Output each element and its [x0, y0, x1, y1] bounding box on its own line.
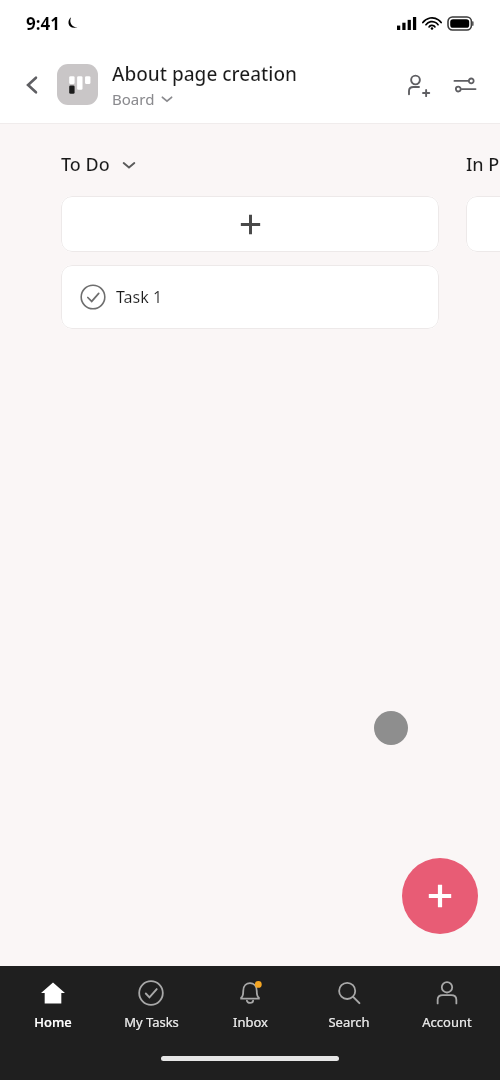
- button[interactable]: Task 1: [61, 265, 439, 329]
- button[interactable]: To Do: [61, 152, 136, 177]
- button[interactable]: Home: [7, 978, 99, 1031]
- button[interactable]: Board: [112, 89, 173, 109]
- staticText: About page creation: [112, 61, 297, 87]
- button[interactable]: Filter and sort: [444, 64, 486, 106]
- button[interactable]: Account: [401, 978, 493, 1031]
- staticText: To Do: [61, 152, 110, 177]
- staticText: Home: [34, 1013, 72, 1031]
- button[interactable]: Search: [303, 978, 395, 1031]
- staticText: Account: [422, 1013, 472, 1031]
- staticText: Board: [112, 89, 155, 109]
- staticText: Task 1: [116, 286, 163, 308]
- staticText: Inbox: [233, 1013, 268, 1031]
- staticText: Search: [328, 1013, 370, 1031]
- staticText: In Progress: [466, 152, 500, 177]
- button[interactable]: Create task: [402, 858, 478, 934]
- button[interactable]: Inbox: [204, 978, 296, 1031]
- button[interactable]: Add task: [61, 196, 439, 252]
- staticText: My Tasks: [124, 1013, 179, 1031]
- button[interactable]: My Tasks: [105, 978, 197, 1031]
- staticText: 9:41: [26, 12, 60, 35]
- button[interactable]: Back: [12, 65, 52, 105]
- button[interactable]: Add member: [396, 64, 438, 106]
